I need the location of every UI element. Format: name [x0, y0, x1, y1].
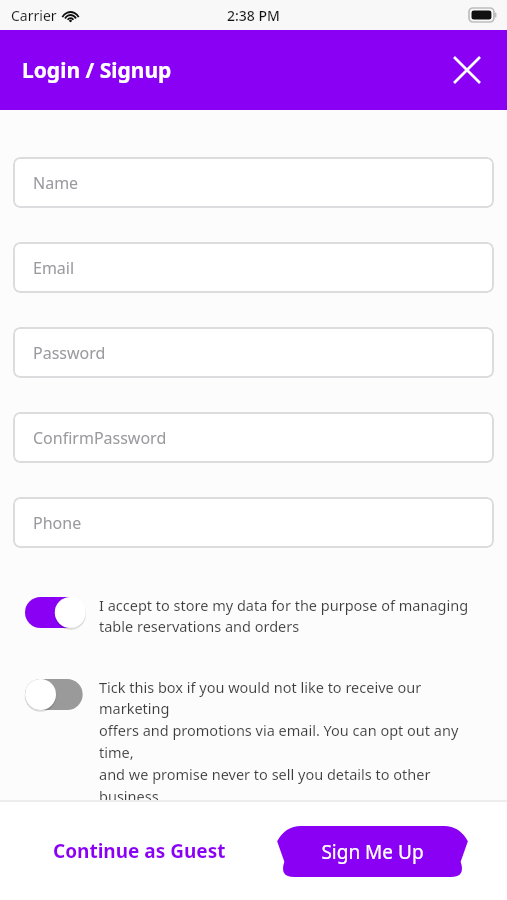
button[interactable]: ConfirmPassword [13, 412, 494, 463]
staticText: Phone [33, 512, 82, 534]
staticText: Name [33, 172, 79, 194]
staticText: I accept to store my data for the purpos… [99, 595, 469, 637]
button[interactable]: I accept to store my data for the purpos… [0, 595, 507, 637]
button[interactable]: Sign Me Up [279, 826, 466, 877]
button[interactable]: Name [13, 157, 494, 208]
staticText: Tick this box if you would not like to r… [99, 677, 485, 800]
staticText: Carrier [11, 6, 57, 25]
button[interactable]: Tick this box if you would not like to r… [0, 677, 507, 800]
button[interactable]: Email [13, 242, 494, 293]
staticText: Password [33, 342, 106, 364]
staticText: Continue as Guest [53, 838, 226, 864]
staticText: Sign Me Up [321, 839, 424, 865]
button[interactable]: Continue as Guest [40, 828, 239, 874]
button[interactable]: Password [13, 327, 494, 378]
button[interactable]: Close [447, 50, 487, 90]
staticText: Email [33, 257, 75, 279]
staticText: ConfirmPassword [33, 427, 167, 449]
button[interactable]: Phone [13, 497, 494, 548]
staticText: 2:38 PM [227, 6, 280, 25]
staticText: Login / Signup [22, 56, 172, 85]
